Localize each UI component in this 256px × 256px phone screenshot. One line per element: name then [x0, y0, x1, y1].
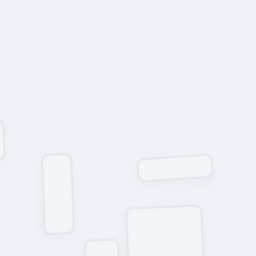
- button[interactable]: Card 3: [138, 157, 212, 179]
- button[interactable]: Card 2: [43, 154, 72, 233]
- button[interactable]: Card 4: [85, 240, 118, 256]
- button[interactable]: Card 1: [0, 120, 4, 160]
